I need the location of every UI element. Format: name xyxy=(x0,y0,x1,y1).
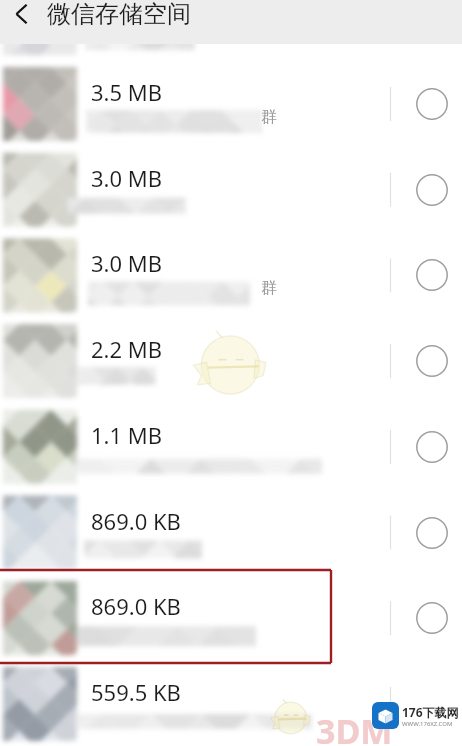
button[interactable]: 869.0 KB xyxy=(0,568,462,652)
button[interactable]: 3.0 MB xyxy=(0,140,462,224)
button[interactable]: Select item xyxy=(401,319,462,403)
button[interactable]: Select item xyxy=(401,491,462,575)
button[interactable]: Select item xyxy=(401,405,462,489)
button[interactable]: 869.0 KB xyxy=(0,483,462,567)
button[interactable]: Back xyxy=(0,0,44,28)
button[interactable]: Select item xyxy=(401,576,462,660)
staticText: 群 xyxy=(261,107,277,127)
staticText: 微信存储空间 xyxy=(47,0,191,29)
staticText: 176下载网 xyxy=(402,704,459,720)
staticText: 3.5 MB xyxy=(91,77,163,107)
button[interactable]: 559.5 KB xyxy=(0,654,462,738)
staticText: 869.0 KB xyxy=(91,506,181,536)
staticText: 3.0 MB xyxy=(91,248,163,278)
staticText: WWW.176XZ.COM xyxy=(402,720,453,728)
staticText: 群 xyxy=(261,278,277,298)
button[interactable]: Select item xyxy=(401,148,462,232)
button[interactable]: Select item xyxy=(401,233,462,317)
button[interactable]: 1.1 MB xyxy=(0,397,462,481)
button[interactable]: 2.2 MB xyxy=(0,311,462,395)
staticText: 2.2 MB xyxy=(91,334,163,364)
button[interactable]: 3.0 MB xyxy=(0,225,462,309)
staticText: 1.1 MB xyxy=(91,420,163,450)
staticText: 559.5 KB xyxy=(91,677,181,707)
button[interactable]: Select item xyxy=(401,62,462,146)
button[interactable]: 3.5 MB xyxy=(0,54,462,138)
staticText: 3DM xyxy=(316,708,393,746)
staticText: 869.0 KB xyxy=(91,591,181,621)
staticText: 3.0 MB xyxy=(91,163,163,193)
